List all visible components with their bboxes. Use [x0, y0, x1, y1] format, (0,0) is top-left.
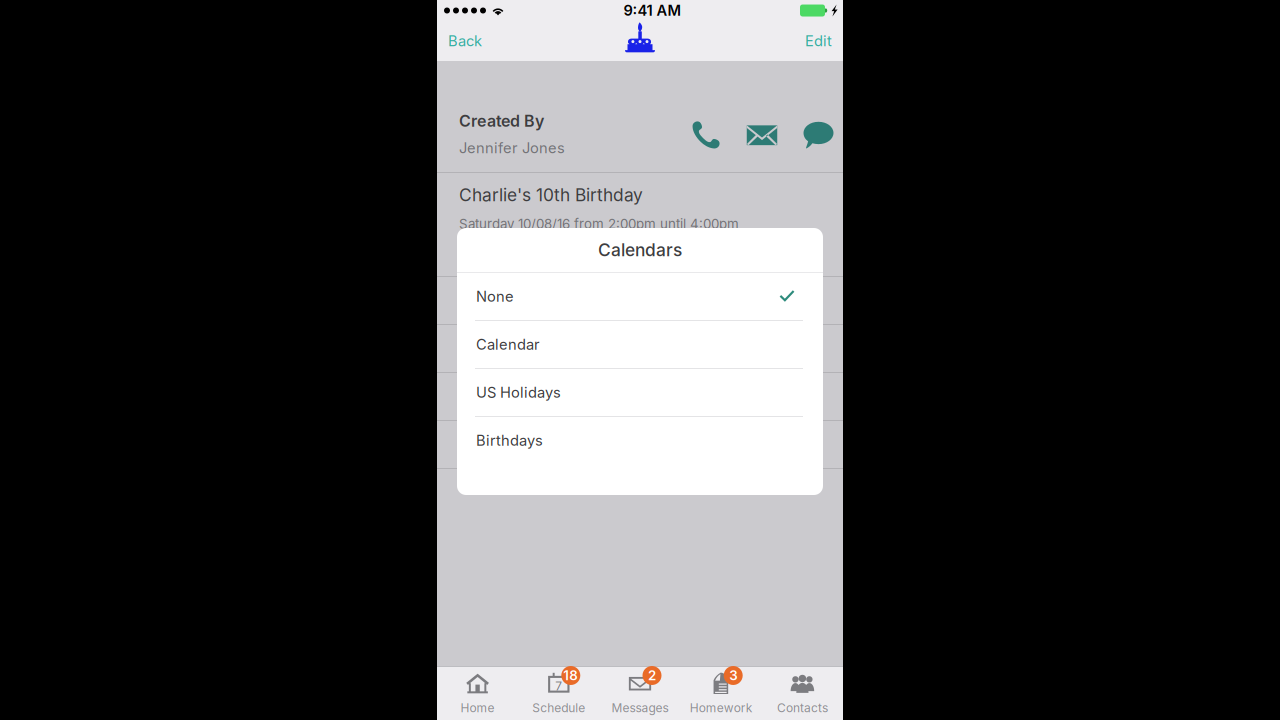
staticText: Calendar — [476, 336, 540, 353]
staticText: Saturday 10/08/16 from 2:00pm until 4:00… — [459, 216, 739, 232]
staticText: US Holidays — [476, 384, 561, 401]
button[interactable]: None — [457, 273, 823, 321]
staticText: Created By — [459, 111, 544, 131]
staticText: Schedule — [532, 701, 585, 715]
button[interactable]: US Holidays — [457, 369, 823, 417]
staticText: Charlie's 10th Birthday — [459, 184, 643, 205]
staticText: 3 — [729, 667, 737, 683]
button[interactable]: Contacts — [762, 669, 843, 717]
button[interactable]: Message — [801, 116, 835, 154]
staticText: Jennifer Jones — [459, 139, 565, 157]
staticText: 9:41 AM — [623, 2, 681, 19]
staticText: None — [476, 288, 514, 305]
staticText: Contacts — [777, 701, 828, 715]
button[interactable]: Edit — [782, 21, 832, 61]
staticText: 7 — [555, 679, 562, 693]
staticText: Birthdays — [476, 432, 543, 449]
button[interactable]: Email — [745, 116, 779, 154]
button[interactable]: 7 — [518, 669, 599, 717]
button[interactable]: 2 — [599, 669, 681, 717]
staticText: Back — [448, 32, 482, 50]
button[interactable]: Call — [688, 116, 722, 154]
staticText: Messages — [611, 701, 668, 715]
button[interactable]: Birthdays — [457, 417, 823, 465]
button[interactable]: Calendar — [457, 321, 823, 369]
button[interactable]: Back — [448, 21, 498, 61]
staticText: 2 — [648, 667, 656, 683]
button[interactable]: Home — [437, 669, 518, 717]
staticText: Calendars — [598, 239, 682, 260]
staticText: Homework — [690, 701, 753, 715]
staticText: 18 — [563, 667, 578, 683]
button[interactable]: 3 — [681, 669, 762, 717]
staticText: Home — [461, 701, 495, 715]
staticText: Edit — [805, 32, 832, 50]
